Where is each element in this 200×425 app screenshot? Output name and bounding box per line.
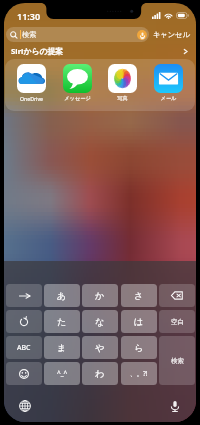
button[interactable]: 検索: [159, 336, 195, 385]
staticText: 検索: [171, 357, 184, 365]
staticText: あ: [57, 290, 67, 301]
staticText: ^_^: [57, 369, 68, 378]
staticText: ま: [57, 342, 67, 353]
staticText: キャンセル: [153, 30, 190, 39]
button[interactable]: Next candidate: [6, 284, 42, 307]
staticText: わ: [95, 368, 105, 379]
staticText: 写真: [101, 95, 144, 102]
button[interactable]: Dictation: [137, 30, 147, 40]
button[interactable]: Undo: [6, 310, 42, 333]
button[interactable]: あ: [44, 284, 80, 307]
staticText: メッセージ: [56, 95, 99, 102]
button[interactable]: な: [82, 310, 118, 333]
staticText: は: [134, 316, 144, 327]
button[interactable]: Backspace: [159, 284, 195, 307]
button[interactable]: さ: [121, 284, 157, 307]
button[interactable]: ABC: [6, 336, 42, 359]
button[interactable]: 空白: [159, 310, 195, 333]
button[interactable]: ま: [44, 336, 80, 359]
staticText: な: [95, 316, 105, 327]
button[interactable]: メッセージ: [56, 64, 99, 102]
button[interactable]: OneDrive: [10, 64, 53, 102]
other: Backspace: [171, 291, 183, 300]
staticText: さ: [134, 290, 144, 301]
button[interactable]: 写真: [101, 64, 144, 102]
button[interactable]: か: [82, 284, 118, 307]
button[interactable]: キャンセル: [149, 28, 194, 41]
button[interactable]: や: [82, 336, 118, 359]
button[interactable]: ら: [121, 336, 157, 359]
staticText: 空白: [171, 318, 184, 326]
button[interactable]: わ: [82, 362, 118, 385]
staticText: ら: [134, 342, 144, 353]
staticText: 検索: [22, 30, 37, 39]
button[interactable]: 検索: [6, 27, 149, 42]
button[interactable]: メール: [147, 64, 190, 102]
staticText: メール: [147, 95, 190, 102]
staticText: 、。?!: [130, 369, 148, 378]
other: Undo: [19, 317, 29, 327]
other: Emoji: [19, 369, 29, 379]
button[interactable]: Switch keyboard: [17, 398, 33, 414]
button[interactable]: 、。?!: [121, 362, 157, 385]
other: Next candidate: [18, 292, 31, 300]
button[interactable]: ^_^: [44, 362, 80, 385]
button[interactable]: は: [121, 310, 157, 333]
staticText: OneDrive: [10, 95, 53, 102]
staticText: ABC: [17, 343, 31, 353]
button[interactable]: Dictation: [167, 398, 183, 414]
button[interactable]: た: [44, 310, 80, 333]
staticText: た: [57, 316, 67, 327]
staticText: か: [95, 290, 105, 301]
staticText: Siriからの提案: [11, 46, 63, 57]
button[interactable]: Siriからの提案: [5, 44, 195, 59]
button[interactable]: Emoji: [6, 362, 42, 385]
staticText: 11:30: [17, 10, 41, 22]
staticText: や: [95, 342, 105, 353]
